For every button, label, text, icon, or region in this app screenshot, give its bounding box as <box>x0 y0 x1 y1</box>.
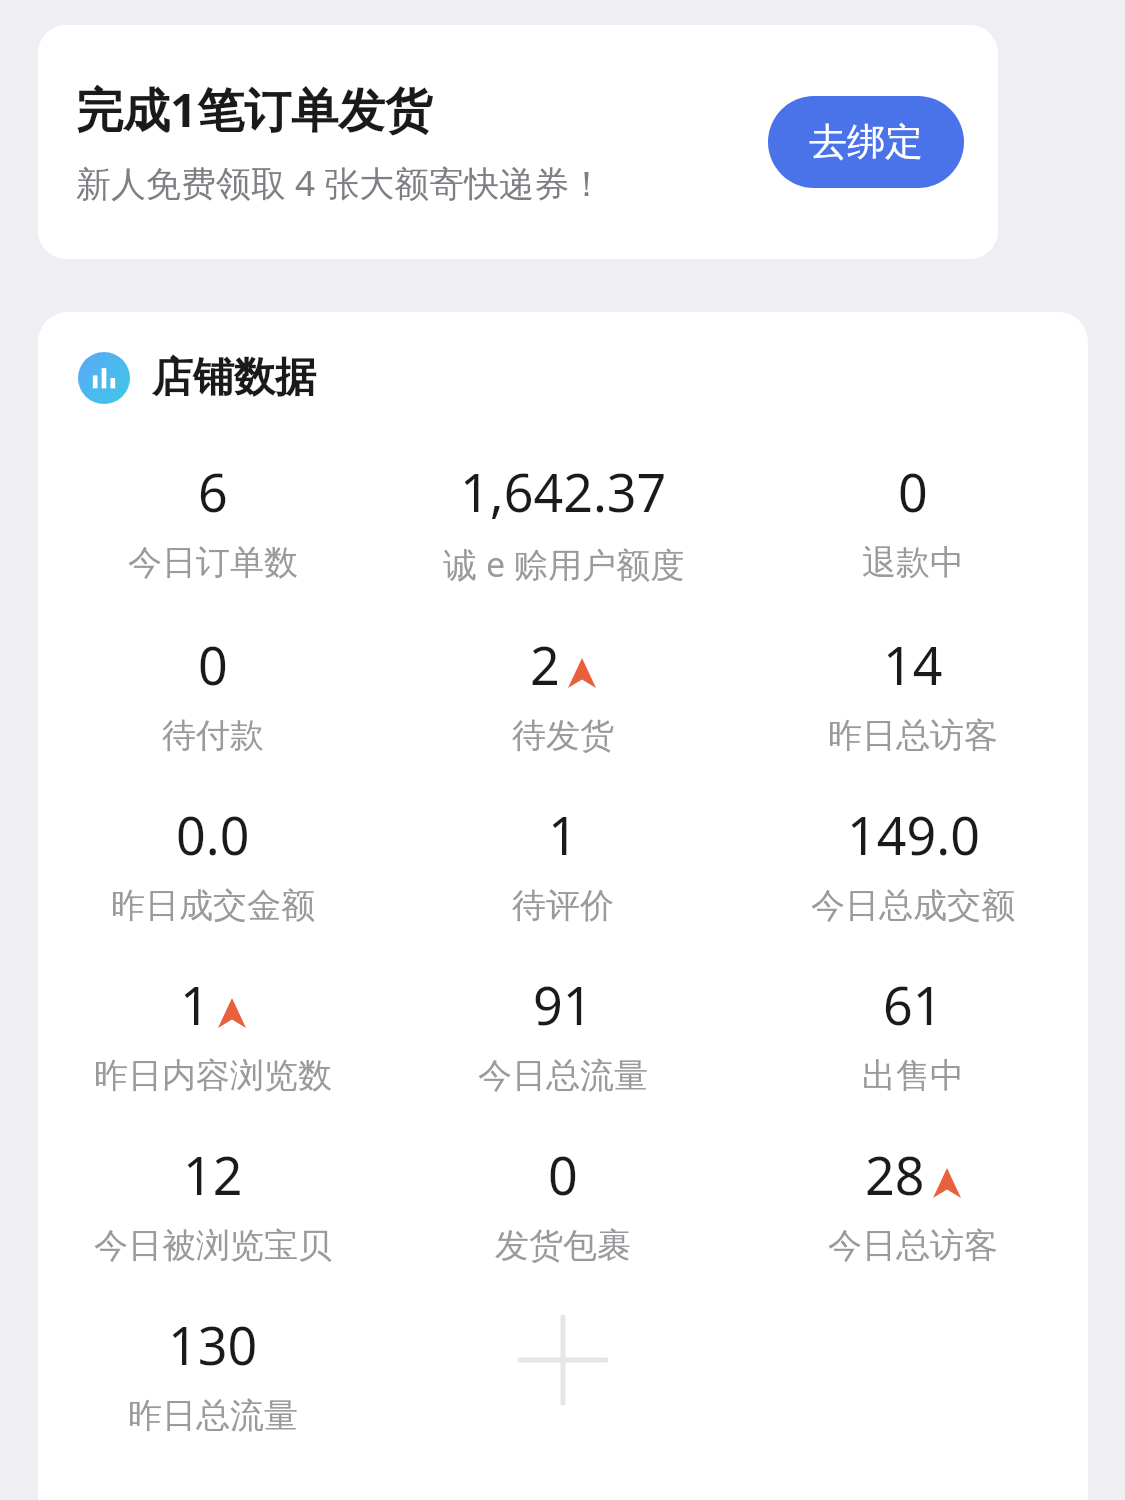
button[interactable]: 完成1笔订单发货 <box>38 25 998 259</box>
staticText: 诚 e 赊用户额度 <box>443 541 684 587</box>
button[interactable]: 14 <box>738 627 1088 759</box>
staticText: 待发货 <box>512 714 614 757</box>
button[interactable]: 61 <box>738 967 1088 1099</box>
staticText: 1 <box>548 799 578 870</box>
button[interactable]: 1,642.37 <box>388 454 738 589</box>
staticText: 14 <box>883 629 943 700</box>
button[interactable]: 28 <box>738 1137 1088 1269</box>
button[interactable]: 1 <box>388 797 738 929</box>
staticText: 61 <box>883 969 943 1040</box>
staticText: 昨日总访客 <box>828 714 998 757</box>
button[interactable]: 店铺数据 <box>78 352 316 404</box>
button[interactable]: 0 <box>738 454 1088 586</box>
staticText: 今日总成交额 <box>811 884 1015 927</box>
staticText: 昨日成交金额 <box>111 884 315 927</box>
staticText: 28 <box>865 1139 925 1210</box>
staticText: 昨日内容浏览数 <box>94 1054 332 1097</box>
button[interactable]: Add metric <box>388 1307 738 1437</box>
staticText: 待评价 <box>512 884 614 927</box>
staticText: 发货包裹 <box>495 1224 631 1267</box>
button[interactable]: 0 <box>388 1137 738 1269</box>
staticText: 新人免费领取 4 张大额寄快递券！ <box>76 159 605 207</box>
staticText: 今日总访客 <box>828 1224 998 1267</box>
staticText: 今日被浏览宝贝 <box>94 1224 332 1267</box>
button[interactable]: 2 <box>388 627 738 759</box>
button[interactable]: 91 <box>388 967 738 1099</box>
staticText: 1,642.37 <box>460 456 667 527</box>
staticText: 130 <box>168 1309 258 1380</box>
button[interactable]: 12 <box>38 1137 388 1269</box>
button[interactable]: 去绑定 <box>768 96 964 188</box>
staticText: 91 <box>533 969 593 1040</box>
staticText: 店铺数据 <box>152 352 316 404</box>
staticText: 今日订单数 <box>128 541 298 584</box>
staticText: 2 <box>530 629 560 700</box>
staticText: 12 <box>183 1139 243 1210</box>
staticText: 0 <box>198 629 228 700</box>
staticText: 出售中 <box>862 1054 964 1097</box>
button[interactable]: 130 <box>38 1307 388 1439</box>
staticText: 1 <box>180 969 210 1040</box>
staticText: 0 <box>548 1139 578 1210</box>
staticText: 0 <box>898 456 928 527</box>
staticText: 今日总流量 <box>478 1054 648 1097</box>
staticText: 退款中 <box>862 541 964 584</box>
staticText: 去绑定 <box>809 118 923 166</box>
button[interactable]: 6 <box>38 454 388 586</box>
button[interactable]: 0.0 <box>38 797 388 929</box>
staticText: 6 <box>198 456 228 527</box>
button[interactable]: 149.0 <box>738 797 1088 929</box>
staticText: 待付款 <box>162 714 264 757</box>
staticText: 0.0 <box>176 799 250 870</box>
staticText: 149.0 <box>847 799 980 870</box>
button[interactable]: 0 <box>38 627 388 759</box>
button[interactable]: 1 <box>38 967 388 1099</box>
staticText: 完成1笔订单发货 <box>76 77 432 141</box>
staticText: 昨日总流量 <box>128 1394 298 1437</box>
